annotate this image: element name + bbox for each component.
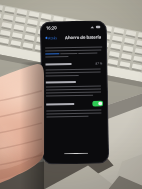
staticText: 87 % xyxy=(95,61,103,66)
button[interactable]: Toggle battery saver xyxy=(42,100,107,117)
staticText: 16:20 xyxy=(46,25,57,31)
other: Back xyxy=(45,36,48,40)
button[interactable]: More info link xyxy=(45,53,59,54)
button[interactable]: Toggle battery saver xyxy=(92,100,103,107)
button[interactable] xyxy=(42,80,107,96)
button[interactable]: Back xyxy=(44,34,58,41)
staticText: Ahorro de batería xyxy=(65,34,102,41)
staticText: Atrás xyxy=(48,35,57,40)
button[interactable]: 87 % xyxy=(41,61,107,76)
